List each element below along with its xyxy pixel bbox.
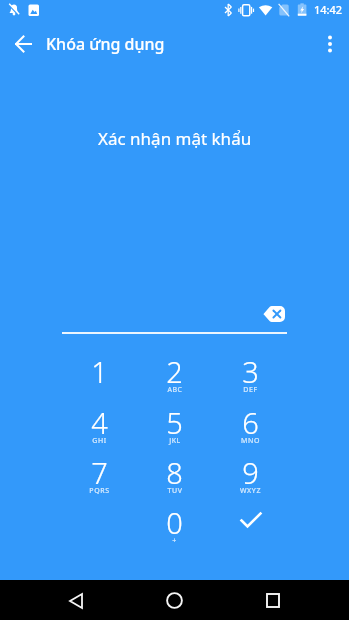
button[interactable]: 7 — [62, 449, 137, 497]
staticText: 0 — [166, 503, 183, 542]
staticText: 4 — [91, 403, 108, 442]
staticText: GHI — [92, 436, 107, 446]
button[interactable]: 2 — [137, 348, 212, 396]
staticText: PQRS — [89, 486, 110, 496]
button[interactable]: 8 — [137, 449, 212, 497]
button[interactable] — [4, 24, 44, 64]
button[interactable]: 0 — [137, 499, 212, 547]
button[interactable] — [52, 580, 100, 620]
staticText: DEF — [243, 385, 258, 395]
button[interactable]: 5 — [137, 399, 212, 447]
staticText: 3 — [242, 352, 259, 391]
staticText: Xác nhận mật khẩu — [98, 127, 252, 150]
staticText: ABC — [167, 385, 183, 395]
button[interactable] — [150, 580, 198, 620]
button[interactable] — [252, 295, 296, 333]
button[interactable] — [311, 24, 349, 64]
button[interactable] — [213, 496, 288, 544]
button[interactable]: 9 — [213, 449, 288, 497]
button[interactable]: 6 — [213, 399, 288, 447]
staticText: 6 — [242, 403, 259, 442]
staticText: JKL — [169, 436, 181, 446]
staticText: Khóa ứng dụng — [46, 33, 165, 55]
staticText: TUV — [167, 486, 183, 496]
button[interactable]: 3 — [213, 348, 288, 396]
button[interactable]: 4 — [62, 399, 137, 447]
staticText: 5 — [166, 403, 183, 442]
button[interactable] — [249, 580, 297, 620]
staticText: 9 — [242, 453, 259, 492]
staticText: + — [172, 536, 177, 546]
staticText: MNO — [241, 436, 260, 446]
staticText: 8 — [166, 453, 183, 492]
staticText: 2 — [166, 352, 183, 391]
staticText: 1 — [91, 352, 108, 391]
staticText: 7 — [91, 453, 108, 492]
staticText: 14:42 — [314, 2, 343, 17]
button[interactable]: 1 — [62, 348, 137, 396]
staticText: WXYZ — [240, 486, 261, 496]
